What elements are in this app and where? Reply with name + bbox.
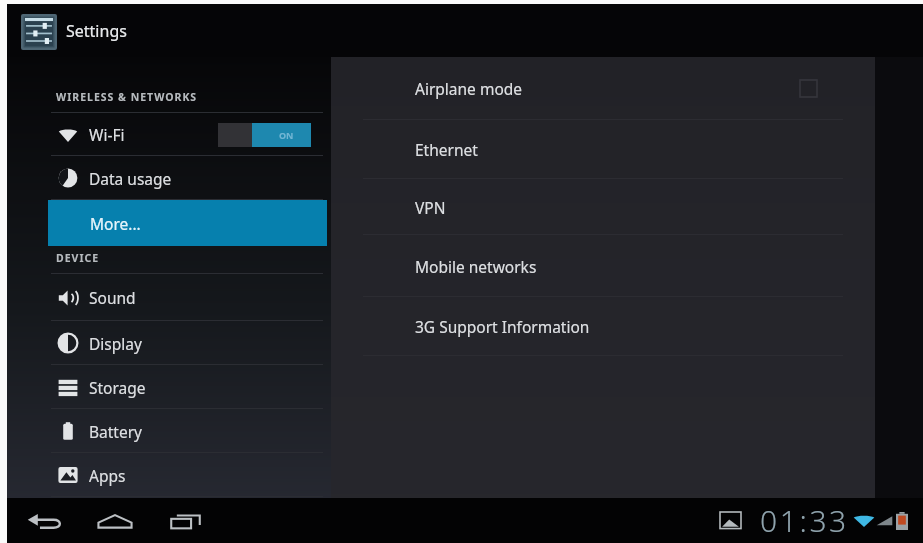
button[interactable]: Sound [7, 274, 331, 321]
staticText: Display [89, 333, 142, 354]
staticText: WIRELESS & NETWORKS [56, 90, 198, 104]
button[interactable]: Mobile networks [331, 235, 923, 297]
button[interactable]: Wi-Fi [7, 113, 331, 156]
button[interactable]: More... [48, 200, 327, 246]
staticText: Settings [66, 20, 127, 42]
button[interactable]: Display [7, 321, 331, 365]
staticText: Storage [89, 377, 146, 398]
button[interactable]: Home [93, 499, 137, 543]
button[interactable]: Airplane mode [331, 57, 923, 120]
staticText: VPN [415, 197, 446, 218]
staticText: Apps [89, 465, 126, 486]
button[interactable]: 3G Support Information [331, 297, 923, 356]
button[interactable]: System status: 01:33, Wi-Fi on, battery [720, 498, 923, 543]
staticText: Airplane mode [415, 78, 523, 99]
staticText: Sound [89, 287, 136, 308]
button[interactable]: Recent apps [163, 499, 207, 543]
button[interactable]: Ethernet [331, 120, 923, 179]
button[interactable]: Apps [7, 453, 331, 497]
staticText: ON [279, 129, 294, 141]
button[interactable]: Back [23, 499, 67, 543]
button[interactable]: Data usage [7, 156, 331, 200]
button[interactable]: Battery [7, 409, 331, 453]
button[interactable]: ON [218, 123, 311, 147]
button[interactable]: VPN [331, 179, 923, 235]
staticText: More... [90, 213, 141, 234]
staticText: Data usage [89, 168, 172, 189]
button[interactable]: Storage [7, 365, 331, 409]
staticText: DEVICE [56, 251, 100, 265]
staticText: Wi-Fi [89, 124, 125, 145]
staticText: Ethernet [415, 139, 478, 160]
staticText: Battery [89, 421, 143, 442]
staticText: 3G Support Information [415, 316, 590, 337]
button[interactable]: Settings [7, 4, 145, 57]
staticText: 01:33 [760, 500, 849, 541]
staticText: Mobile networks [415, 256, 537, 277]
